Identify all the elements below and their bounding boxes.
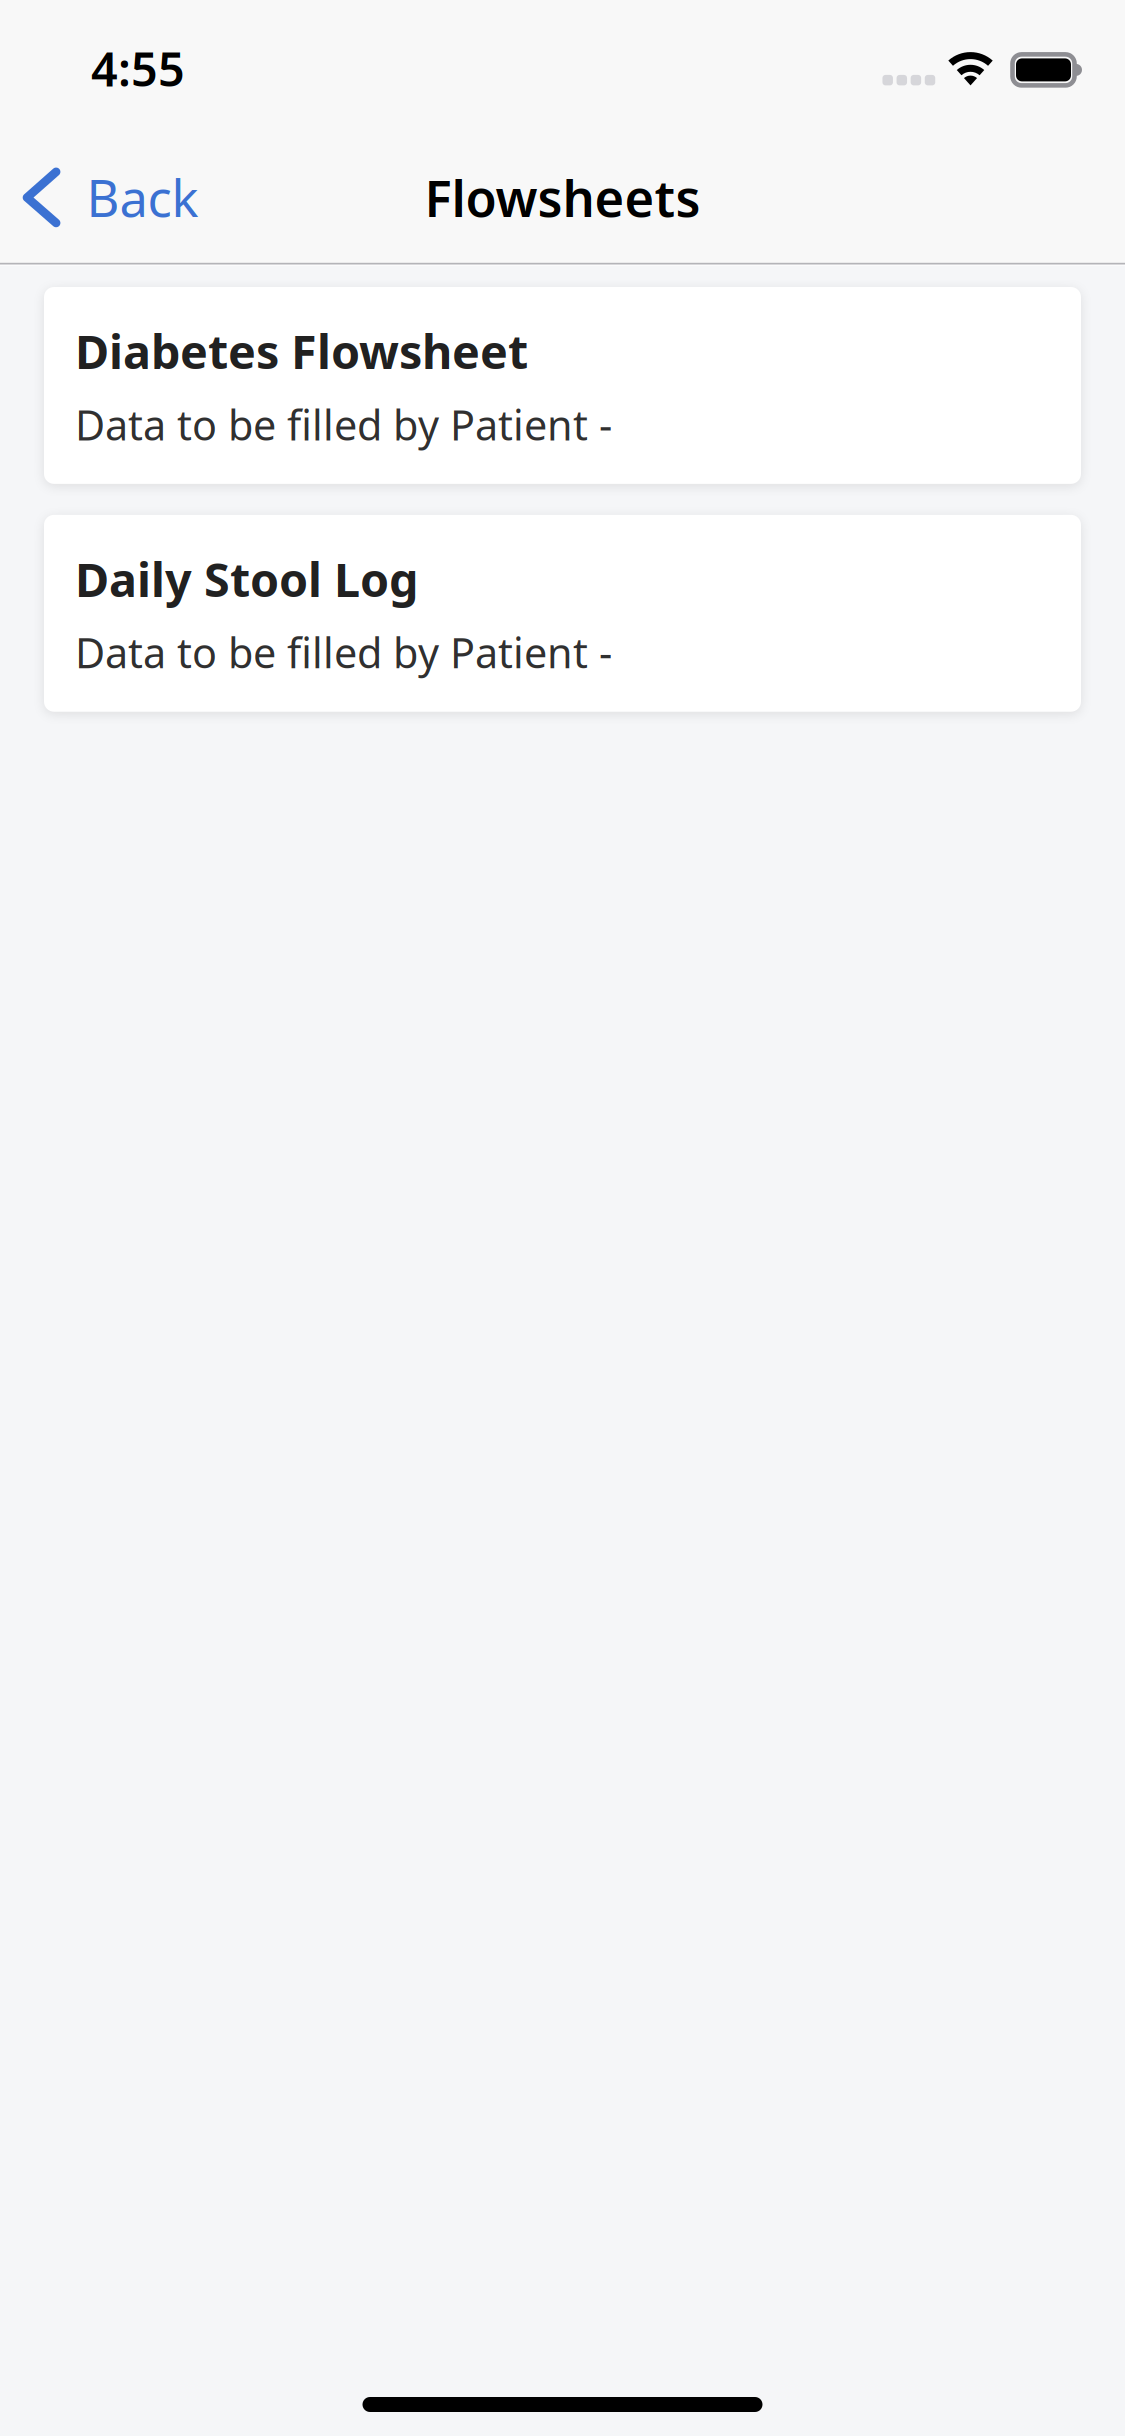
button[interactable]: Daily Stool Log: [44, 515, 1081, 712]
staticText: 4:55: [91, 37, 185, 99]
button[interactable]: Diabetes Flowsheet: [44, 287, 1081, 484]
button[interactable]: Back: [0, 142, 224, 253]
staticText: Data to be filled by Patient -: [75, 625, 612, 680]
staticText: Back: [86, 164, 198, 231]
staticText: Flowsheets: [424, 164, 700, 231]
staticText: Daily Stool Log: [75, 548, 418, 610]
staticText: Diabetes Flowsheet: [75, 320, 528, 382]
staticText: Data to be filled by Patient -: [75, 397, 612, 452]
